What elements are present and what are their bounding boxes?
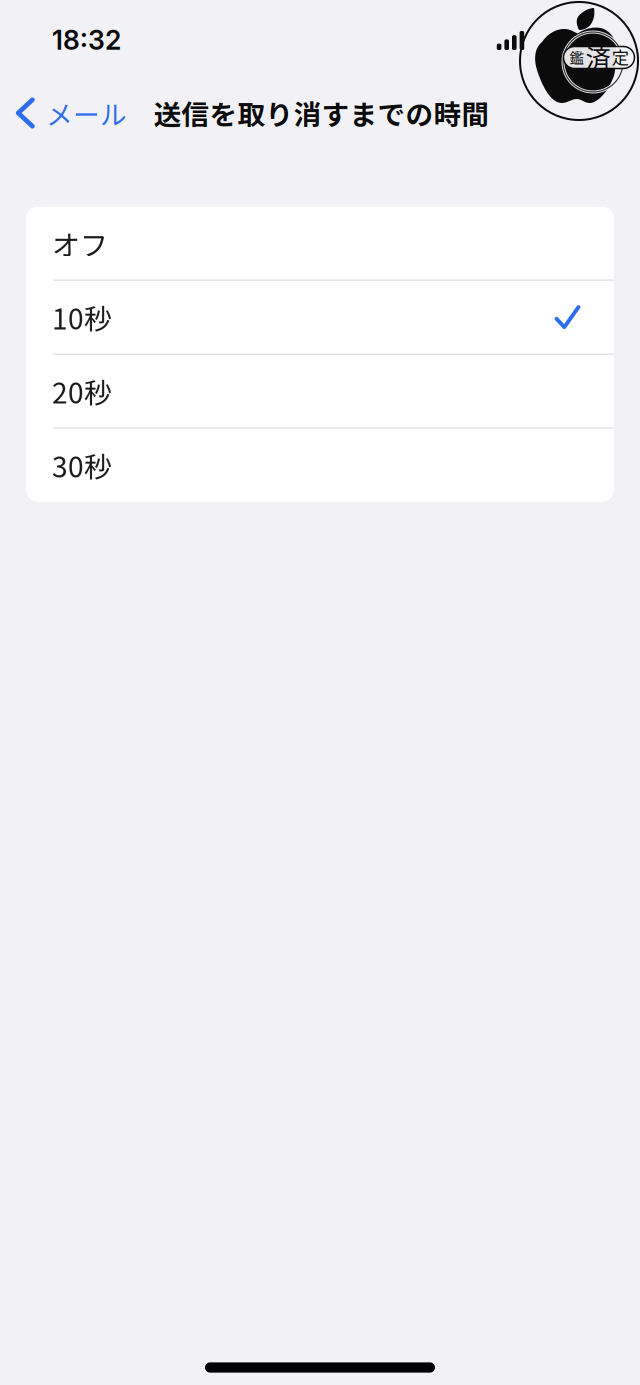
staticText: 30秒	[52, 445, 112, 485]
staticText: 18:32	[52, 24, 121, 56]
button[interactable]: 20秒	[26, 355, 613, 429]
button[interactable]: メール	[7, 83, 137, 143]
button[interactable]: 30秒	[26, 429, 613, 502]
staticText: オフ	[52, 223, 108, 263]
staticText: メール	[46, 94, 127, 132]
staticText: 20秒	[52, 371, 112, 411]
staticText: 送信を取り消すまでの時間	[153, 93, 489, 133]
button[interactable]: オフ	[26, 207, 613, 281]
staticText: 定	[611, 44, 628, 70]
staticText: 鑑	[569, 46, 584, 68]
staticText: 済	[585, 39, 610, 75]
staticText: 10秒	[52, 297, 112, 337]
button[interactable]: 10秒	[26, 281, 613, 355]
